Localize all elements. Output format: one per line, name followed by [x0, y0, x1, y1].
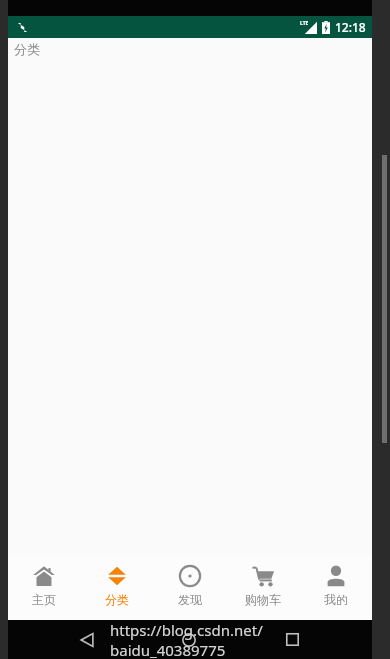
staticText: 分类	[14, 41, 40, 57]
button[interactable]: 发现	[153, 555, 226, 620]
staticText: LTE	[300, 20, 309, 27]
button[interactable]: 分类	[80, 555, 153, 620]
staticText: 12:18	[335, 19, 366, 35]
other: Recent apps	[286, 633, 299, 646]
staticText: 发现	[178, 592, 202, 607]
button[interactable]: 主页	[8, 555, 80, 620]
button[interactable]: 我的	[299, 555, 372, 620]
staticText: https://blog.csdn.net/baidu_40389775	[110, 620, 372, 659]
staticText: 主页	[32, 592, 56, 607]
other: Back	[80, 633, 94, 647]
other: Home	[182, 633, 196, 647]
staticText: 分类	[105, 592, 129, 607]
button[interactable]: 购物车	[226, 555, 299, 620]
staticText: 我的	[324, 592, 348, 607]
staticText: 购物车	[245, 592, 281, 607]
